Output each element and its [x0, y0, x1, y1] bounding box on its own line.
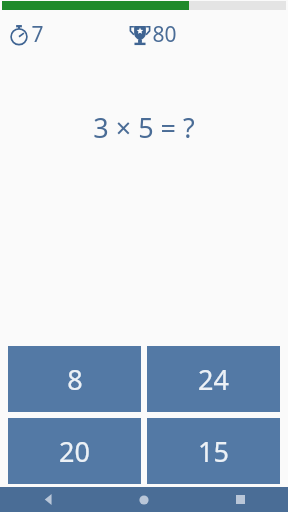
button[interactable]: Recent apps: [192, 487, 288, 512]
staticText: 80: [152, 20, 177, 49]
other: Timer: [8, 24, 30, 46]
button[interactable]: 24: [147, 346, 280, 412]
other: Score: [128, 23, 152, 47]
staticText: 8: [67, 361, 83, 398]
staticText: 20: [59, 433, 90, 470]
button[interactable]: Home: [96, 487, 192, 512]
button[interactable]: 20: [8, 418, 141, 484]
staticText: 3 × 5 = ?: [93, 109, 195, 146]
staticText: 24: [198, 361, 229, 398]
button[interactable]: 15: [147, 418, 280, 484]
button[interactable]: Back: [0, 487, 96, 512]
staticText: 15: [198, 433, 229, 470]
staticText: 7: [31, 20, 44, 49]
button[interactable]: 8: [8, 346, 141, 412]
